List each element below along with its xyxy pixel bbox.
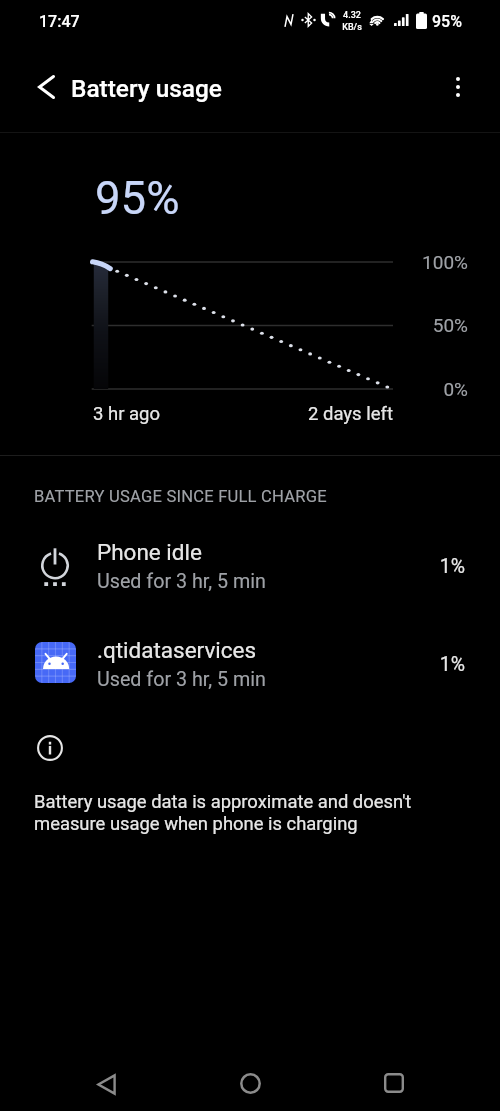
staticText: Used for 3 hr, 5 min — [97, 668, 266, 691]
staticText: 95% — [432, 12, 462, 31]
staticText: Battery usage data is approximate and do… — [34, 791, 412, 835]
staticText: Used for 3 hr, 5 min — [97, 570, 266, 593]
staticText: Phone idle — [97, 539, 202, 565]
button[interactable]: Recent apps — [370, 1059, 418, 1107]
staticText: 17:47 — [39, 12, 80, 31]
staticText: KB/s — [342, 22, 362, 33]
staticText: 95% — [95, 172, 180, 225]
staticText: Battery usage — [71, 74, 222, 103]
staticText: 1% — [385, 653, 465, 676]
staticText: 3 hr ago — [93, 403, 161, 425]
button[interactable]: Back — [82, 1060, 130, 1108]
staticText: 0% — [368, 378, 468, 400]
staticText: 50% — [368, 314, 468, 336]
button[interactable]: Information — [25, 723, 75, 773]
button[interactable]: Phone idle — [0, 530, 500, 602]
button[interactable]: More options — [434, 63, 482, 111]
staticText: .qtidataservices — [97, 637, 257, 663]
staticText: 100% — [368, 251, 468, 273]
button[interactable]: .qtidataservices — [0, 628, 500, 700]
button[interactable]: Home — [226, 1059, 274, 1107]
button[interactable]: Back — [22, 63, 70, 111]
staticText: 4.32 — [343, 10, 361, 21]
staticText: 2 days left — [193, 403, 393, 425]
staticText: BATTERY USAGE SINCE FULL CHARGE — [34, 487, 327, 506]
staticText: 1% — [385, 555, 465, 578]
